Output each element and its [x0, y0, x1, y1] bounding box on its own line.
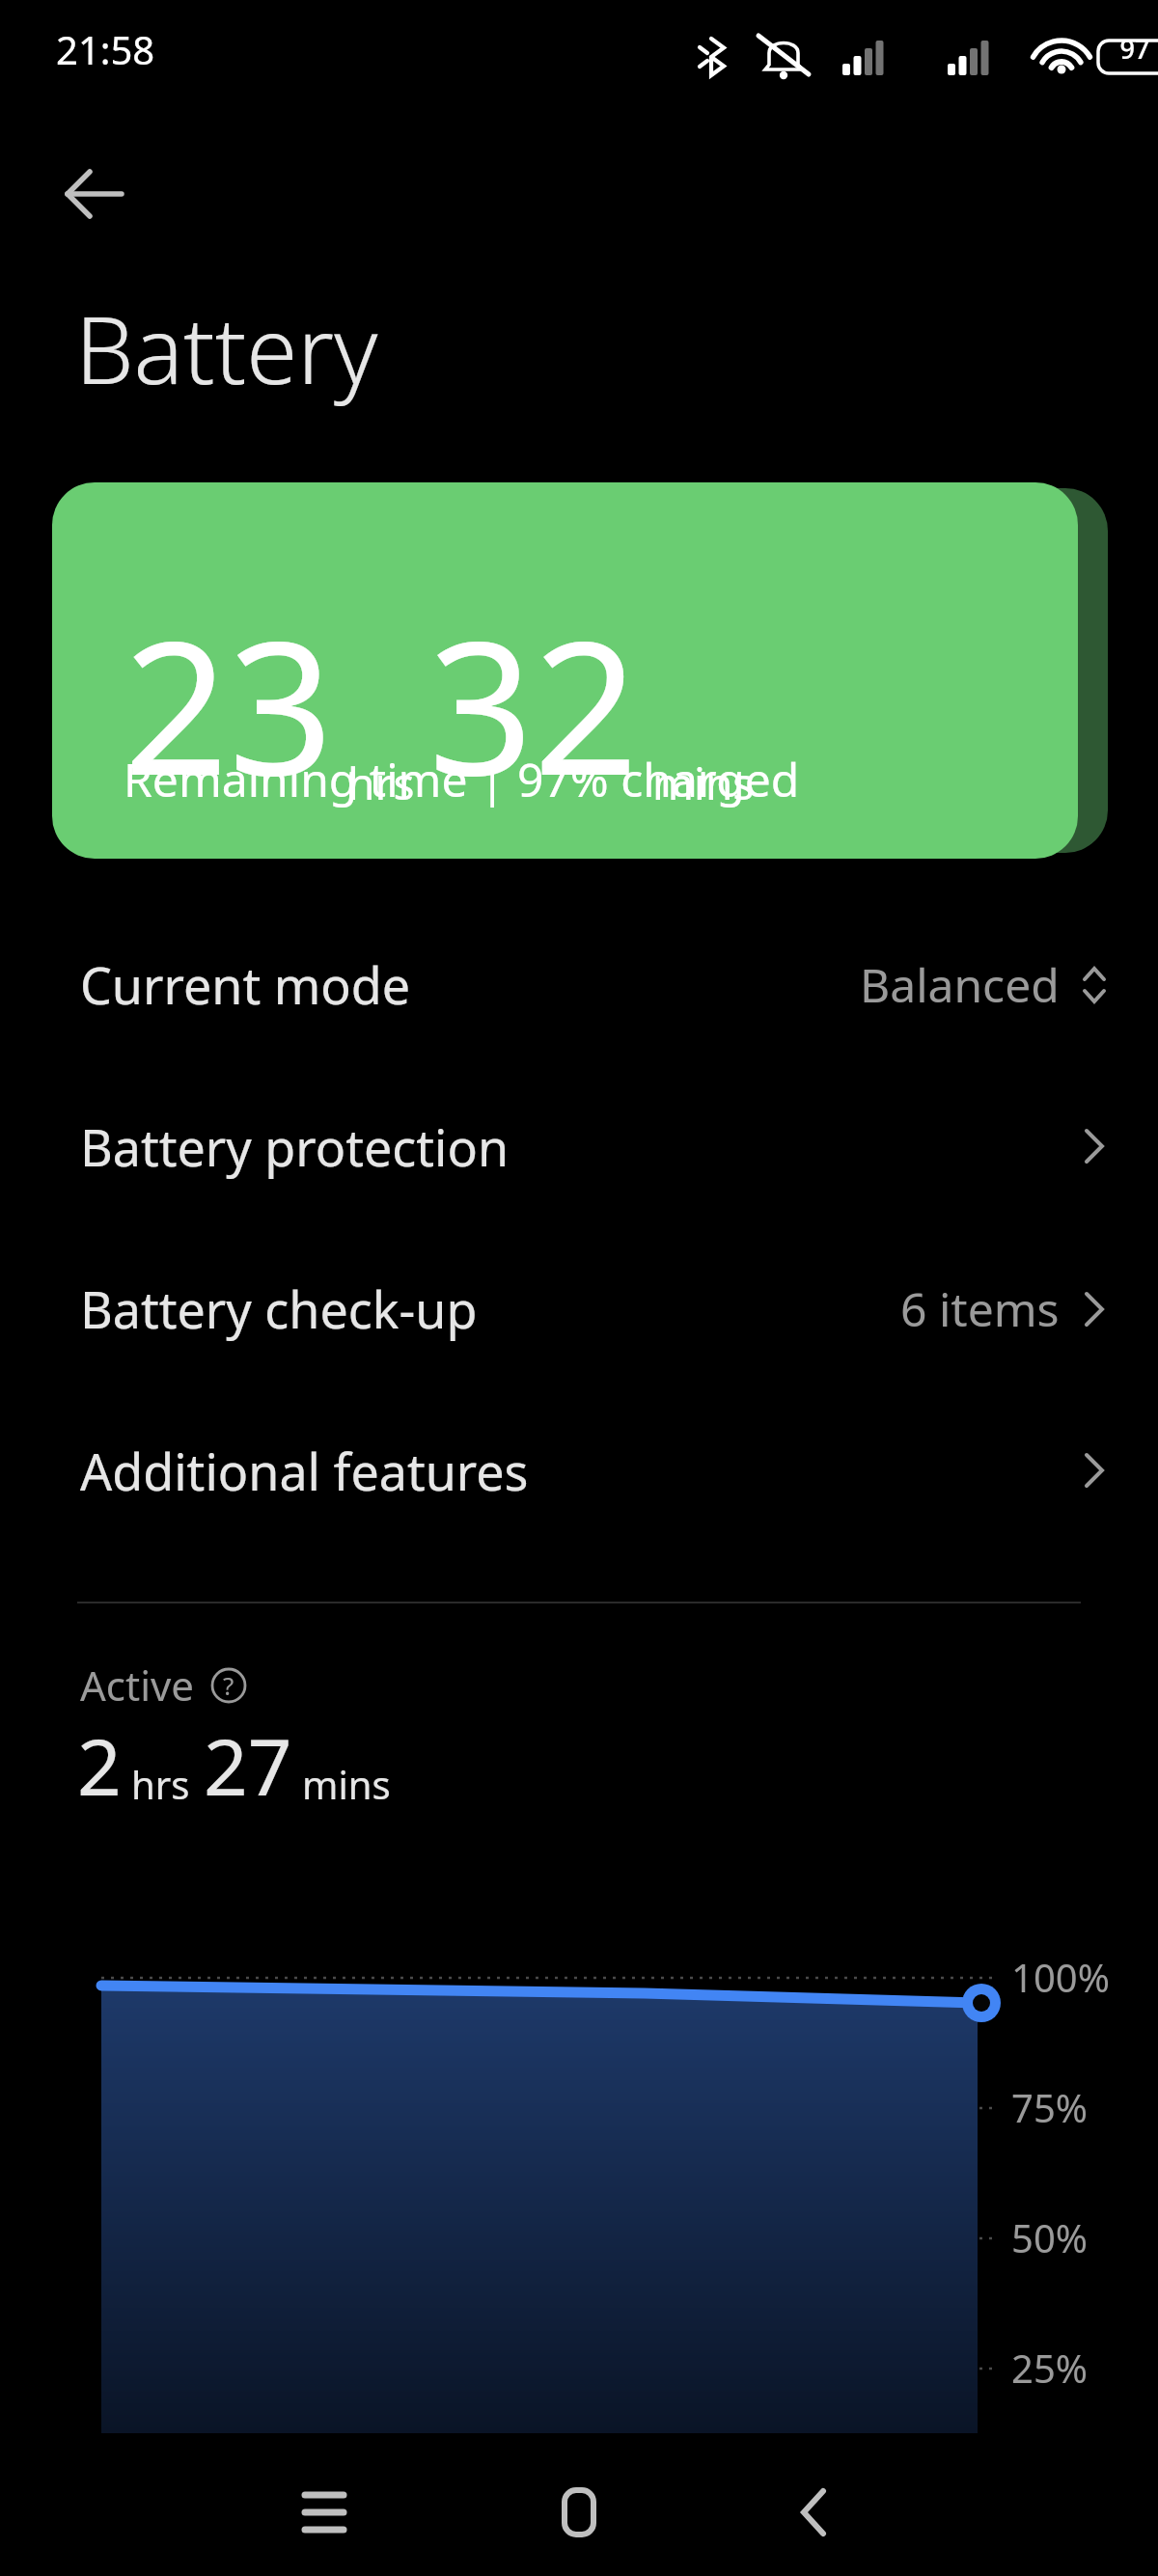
staticText: hrs — [347, 753, 415, 813]
staticText: 2 — [77, 1713, 122, 1818]
button[interactable]: Help about active time — [210, 1667, 247, 1704]
staticText: ? — [223, 1668, 234, 1702]
button[interactable]: Back — [762, 2466, 855, 2559]
staticText: Additional features — [80, 1437, 529, 1505]
staticText: Active — [80, 1658, 195, 1713]
button[interactable]: Recents — [278, 2466, 371, 2559]
staticText: Battery — [75, 285, 378, 411]
staticText: 97 — [1098, 31, 1158, 67]
button[interactable]: Home — [533, 2466, 625, 2559]
staticText: 27 — [204, 1713, 292, 1818]
button[interactable]: Current mode — [0, 907, 1158, 1061]
staticText: Current mode — [80, 950, 411, 1019]
staticText: mins — [652, 753, 755, 813]
staticText: 100% — [1011, 1951, 1110, 2003]
staticText: 25% — [1011, 2342, 1088, 2394]
staticText: Battery protection — [80, 1112, 510, 1181]
button[interactable]: 23 — [52, 482, 1078, 859]
staticText: 32 — [428, 579, 639, 829]
staticText: 6 items — [900, 1277, 1060, 1340]
button[interactable]: Battery protection — [0, 1069, 1158, 1223]
staticText: 75% — [1011, 2081, 1088, 2133]
button[interactable]: Back — [50, 150, 139, 238]
staticText: 23 — [124, 579, 334, 829]
button[interactable]: Additional features — [0, 1393, 1158, 1548]
staticText: hrs — [131, 1758, 190, 1810]
staticText: mins — [302, 1758, 391, 1810]
button[interactable]: Battery check-up — [0, 1231, 1158, 1385]
staticText: 21:58 — [56, 23, 155, 75]
staticText: Remaining time | 97% charged — [124, 748, 800, 810]
staticText: Balanced — [860, 953, 1060, 1016]
staticText: Battery check-up — [80, 1274, 478, 1343]
staticText: 50% — [1011, 2211, 1088, 2263]
